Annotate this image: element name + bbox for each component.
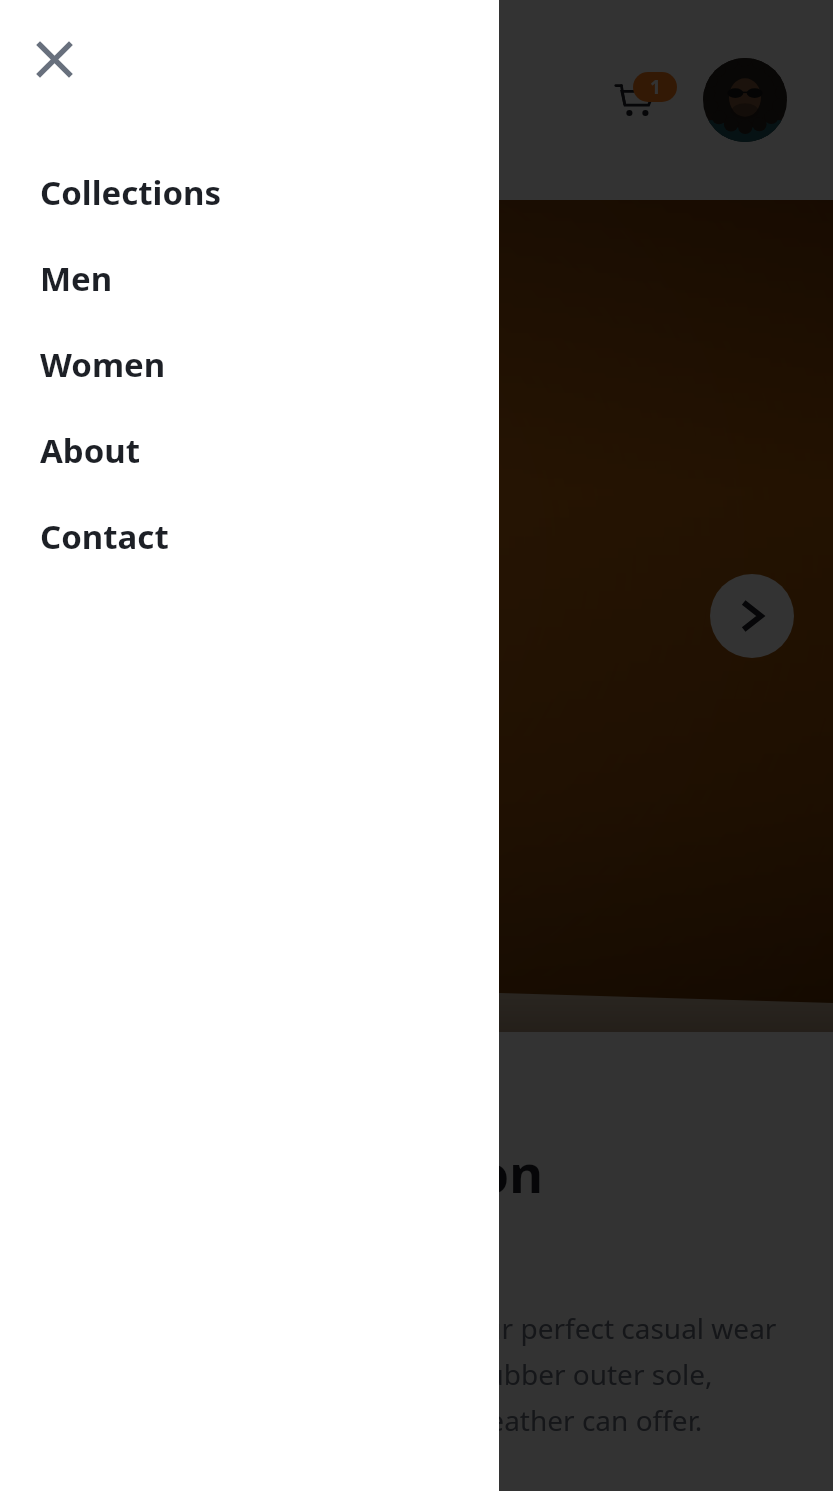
- button[interactable]: Next image: [710, 574, 794, 658]
- button[interactable]: Men: [0, 235, 499, 321]
- staticText: Women: [40, 342, 166, 387]
- button[interactable]: Contact: [0, 493, 499, 579]
- button[interactable]: Women: [0, 321, 499, 407]
- staticText: About: [40, 428, 141, 473]
- button[interactable]: Close menu: [28, 33, 80, 85]
- button[interactable]: About: [0, 407, 499, 493]
- staticText: Fall Limited Edition Sneakers: [46, 1137, 787, 1267]
- button[interactable]: Profile: [703, 58, 787, 142]
- button[interactable]: Cart, 1 item: [607, 72, 663, 128]
- staticText: These low-profile sneakers are your perf…: [46, 1309, 787, 1439]
- staticText: Collections: [40, 170, 222, 215]
- button[interactable]: Collections: [0, 149, 499, 235]
- staticText: Contact: [40, 514, 169, 559]
- staticText: 1: [650, 74, 661, 100]
- staticText: Men: [40, 256, 113, 301]
